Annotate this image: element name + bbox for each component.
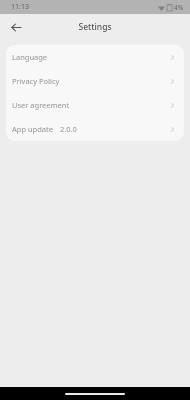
staticText: Language: [12, 52, 48, 62]
button[interactable]: Privacy Policy: [6, 69, 184, 93]
staticText: User agreement: [12, 100, 70, 110]
button[interactable]: App update: [6, 117, 184, 141]
staticText: 2.0.0: [60, 124, 77, 134]
staticText: App update: [12, 124, 53, 134]
staticText: Privacy Policy: [12, 76, 60, 86]
button[interactable]: Language: [6, 45, 184, 69]
staticText: Settings: [78, 21, 112, 33]
button[interactable]: Back: [5, 16, 27, 38]
staticText: 11:13: [11, 2, 29, 12]
button[interactable]: User agreement: [6, 93, 184, 117]
staticText: 4%: [174, 3, 184, 12]
